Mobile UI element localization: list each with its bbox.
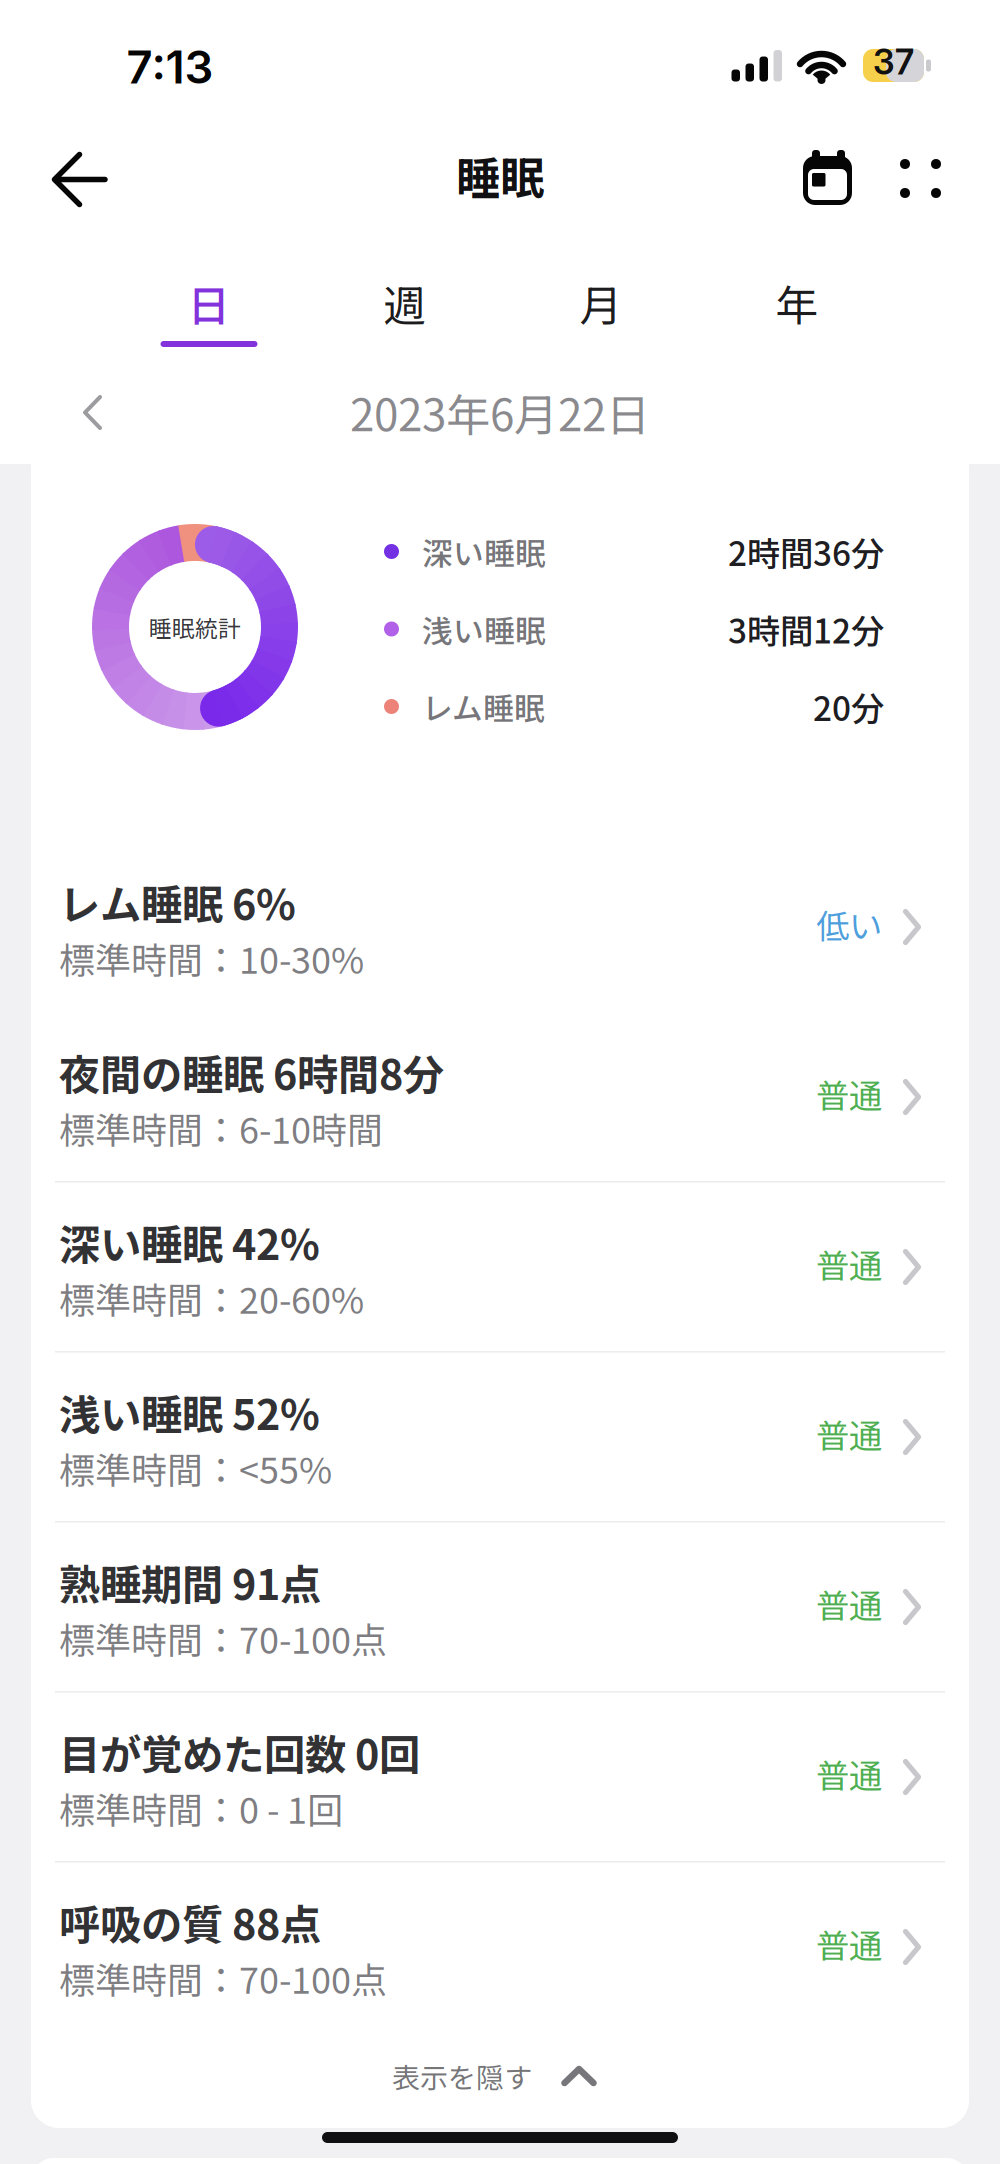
staticText: 浅い睡眠 52% — [59, 1382, 320, 1442]
button[interactable]: 呼吸の質 88点 — [31, 1862, 969, 2032]
staticText: 年 — [775, 272, 818, 334]
button[interactable]: Back — [52, 152, 108, 207]
staticText: 深い睡眠 — [422, 529, 546, 574]
staticText: 熟睡期間 91点 — [59, 1552, 321, 1612]
button[interactable]: More — [900, 159, 941, 198]
staticText: 睡眠統計 — [149, 611, 241, 643]
staticText: 週 — [383, 272, 426, 334]
button[interactable]: 深い睡眠 42% — [31, 1182, 969, 1352]
button[interactable]: 浅い睡眠 52% — [31, 1352, 969, 1522]
staticText: 標準時間：70-100点 — [59, 1952, 387, 2004]
staticText: 標準時間：70-100点 — [59, 1612, 387, 1664]
staticText: 低い — [816, 900, 882, 948]
button[interactable]: 熟睡期間 91点 — [31, 1522, 969, 1692]
button[interactable]: 週 — [307, 273, 503, 333]
staticText: 普通 — [816, 1750, 882, 1798]
staticText: 目が覚めた回数 0回 — [59, 1722, 420, 1782]
staticText: 月 — [579, 272, 622, 334]
staticText: 37 — [873, 41, 914, 83]
staticText: 表示を隠す — [392, 2056, 532, 2096]
button[interactable]: 表示を隠す — [304, 2048, 684, 2104]
staticText: 7:13 — [126, 40, 213, 94]
staticText: 睡眠 — [456, 143, 544, 207]
staticText: 日 — [187, 272, 230, 334]
staticText: 普通 — [816, 1920, 882, 1968]
staticText: 標準時間：0 - 1回 — [59, 1782, 343, 1834]
staticText: 2時間36分 — [728, 527, 884, 576]
button[interactable]: Calendar — [803, 150, 852, 205]
staticText: 普通 — [816, 1070, 882, 1118]
staticText: 20分 — [813, 682, 884, 731]
staticText: 普通 — [816, 1240, 882, 1288]
staticText: 標準時間：20-60% — [59, 1272, 364, 1324]
staticText: 普通 — [816, 1410, 882, 1458]
button[interactable]: Previous day — [82, 395, 104, 431]
staticText: 夜間の睡眠 6時間8分 — [59, 1042, 444, 1102]
staticText: レム睡眠 6% — [59, 872, 296, 932]
staticText: レム睡眠 — [422, 684, 545, 729]
staticText: 普通 — [816, 1580, 882, 1628]
staticText: 呼吸の質 88点 — [59, 1892, 321, 1952]
button[interactable]: 目が覚めた回数 0回 — [31, 1692, 969, 1862]
staticText: 標準時間：6-10時間 — [59, 1102, 383, 1154]
staticText: 2023年6月22日 — [350, 380, 650, 444]
button[interactable]: 夜間の睡眠 6時間8分 — [31, 1012, 969, 1182]
staticText: 標準時間：10-30% — [59, 932, 364, 984]
staticText: 深い睡眠 42% — [59, 1212, 320, 1272]
button[interactable]: 日 — [111, 273, 307, 333]
staticText: 標準時間：<55% — [59, 1442, 332, 1494]
button[interactable]: 年 — [699, 273, 895, 333]
button[interactable]: 月 — [503, 273, 699, 333]
staticText: 3時間12分 — [728, 605, 884, 653]
staticText: 浅い睡眠 — [422, 607, 546, 651]
button[interactable]: レム睡眠 6% — [31, 842, 969, 1012]
